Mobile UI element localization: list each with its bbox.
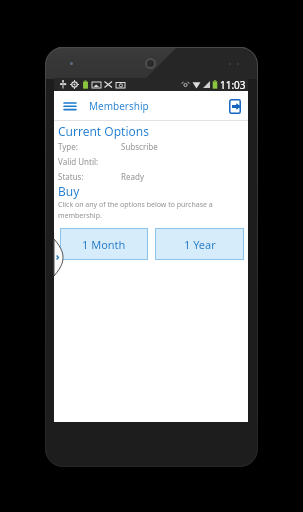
staticText: 1 Year <box>184 237 216 252</box>
staticText: Ready <box>121 171 144 182</box>
button[interactable]: Log out <box>223 91 247 121</box>
staticText: Click on any of the options below to pur… <box>58 200 220 220</box>
button[interactable]: Open navigation menu <box>58 91 82 121</box>
button[interactable]: 1 Month <box>60 228 148 260</box>
staticText: 11:03 <box>220 78 246 91</box>
staticText: Subscribe <box>121 141 158 152</box>
staticText: Type: <box>58 141 78 152</box>
staticText: Current Options <box>58 123 149 139</box>
staticText: Valid Until: <box>58 156 99 167</box>
staticText: Membership <box>89 99 149 113</box>
button[interactable]: Open side panel <box>54 239 63 276</box>
staticText: Buy <box>58 183 80 199</box>
staticText: 1 Month <box>82 237 126 252</box>
button[interactable]: 1 Year <box>155 228 244 260</box>
staticText: Status: <box>58 171 84 182</box>
